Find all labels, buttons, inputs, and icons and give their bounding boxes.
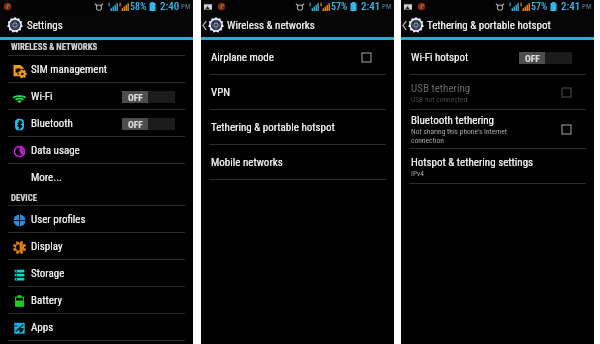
button[interactable]: Checkbox (362, 53, 371, 62)
staticText: Display (31, 240, 63, 253)
button[interactable]: Storage (0, 260, 193, 287)
staticText: USB tethering (411, 82, 471, 95)
button[interactable]: Wireless & networks (201, 13, 394, 37)
staticText: Bluetooth (31, 117, 73, 130)
staticText: 2:41 (361, 0, 381, 13)
staticText: Battery (31, 294, 62, 307)
button[interactable]: Mobile networks (201, 145, 394, 180)
button[interactable]: Airplane mode (201, 40, 394, 75)
button[interactable]: Data usage (0, 137, 193, 164)
staticText: User profiles (31, 213, 86, 226)
button[interactable]: Hotspot & tethering settings (401, 149, 594, 184)
button[interactable]: More... (0, 164, 193, 191)
staticText: WIRELESS & NETWORKS (11, 42, 98, 52)
button[interactable]: Bluetooth (0, 110, 193, 137)
button[interactable]: Bluetooth tethering (401, 110, 594, 149)
staticText: Bluetooth tethering (411, 114, 495, 127)
staticText: Mobile networks (211, 156, 283, 169)
staticText: PM (382, 3, 392, 11)
staticText: PM (181, 3, 191, 11)
staticText: Airplane mode (211, 51, 274, 64)
staticText: Wi-Fi hotspot (411, 51, 469, 64)
staticText: IPv4 (411, 169, 531, 178)
staticText: Wi-Fi (31, 90, 53, 103)
button[interactable]: OFF (122, 91, 175, 103)
button[interactable]: Battery (0, 287, 193, 314)
staticText: Not sharing this phone's Internet connec… (411, 127, 516, 145)
button[interactable]: Display (0, 233, 193, 260)
button[interactable]: SIM management (0, 56, 193, 83)
staticText: Data usage (31, 144, 80, 157)
staticText: OFF (525, 53, 540, 64)
staticText: OFF (128, 119, 143, 130)
staticText: VPN (211, 86, 231, 99)
button[interactable]: User profiles (0, 206, 193, 233)
staticText: DEVICE (11, 193, 38, 203)
staticText: 2:41 (561, 0, 581, 13)
staticText: 58% (130, 1, 147, 13)
staticText: Wireless & networks (227, 19, 315, 32)
staticText: Tethering & portable hotspot (427, 19, 551, 32)
staticText: Tethering & portable hotspot (211, 121, 335, 134)
button[interactable]: VPN (201, 75, 394, 110)
button[interactable]: USB tethering (401, 75, 594, 110)
staticText: USB not connected (411, 95, 531, 104)
staticText: 57% (331, 1, 348, 13)
staticText: SIM management (31, 63, 108, 76)
staticText: OFF (128, 92, 143, 103)
button[interactable]: Wi-Fi (0, 83, 193, 110)
button[interactable]: Apps (0, 314, 193, 341)
button[interactable]: Checkbox (562, 125, 571, 134)
staticText: PM (582, 3, 592, 11)
staticText: 2:40 (160, 0, 180, 13)
button[interactable]: Tethering & portable hotspot (201, 110, 394, 145)
staticText: Hotspot & tethering settings (411, 156, 534, 169)
button[interactable]: Tethering & portable hotspot (401, 13, 594, 37)
button[interactable]: OFF (122, 118, 175, 130)
button[interactable]: OFF (519, 52, 572, 64)
button[interactable]: Wi-Fi hotspot (401, 40, 594, 75)
staticText: Storage (31, 267, 65, 280)
button[interactable]: Checkbox (562, 88, 571, 97)
staticText: Settings (27, 19, 63, 32)
staticText: 57% (531, 1, 548, 13)
button[interactable]: Settings (0, 13, 193, 37)
staticText: More... (31, 171, 62, 184)
staticText: Apps (31, 321, 54, 334)
